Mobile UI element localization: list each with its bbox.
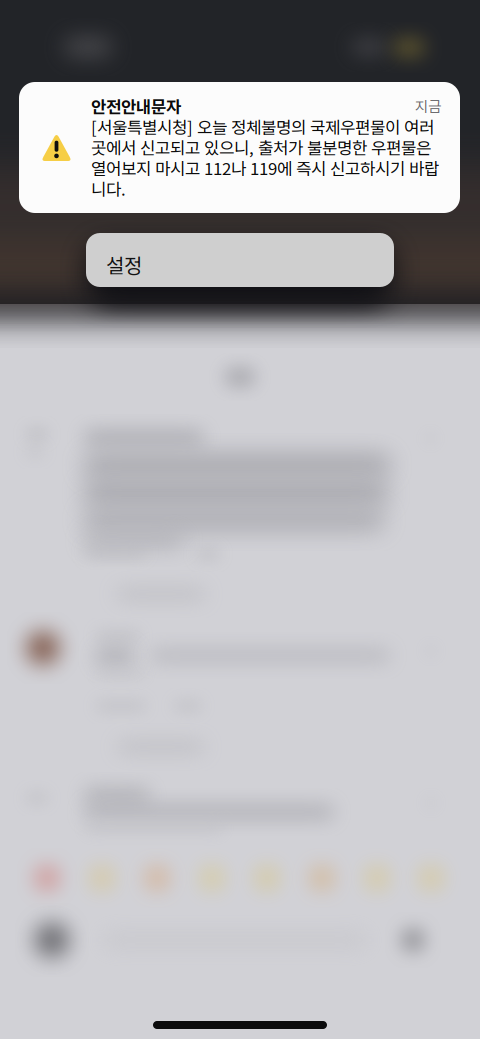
button[interactable]: 안전안내문자 — [19, 82, 460, 213]
staticText: 안전안내문자 — [91, 94, 181, 118]
staticText: [서울특별시청] 오늘 정체불명의 국제우편물이 여러 곳에서 신고되고 있으니… — [91, 116, 439, 199]
button[interactable]: 설정 — [86, 233, 394, 287]
staticText: 지금 — [415, 95, 441, 116]
staticText: 설정 — [106, 250, 142, 279]
